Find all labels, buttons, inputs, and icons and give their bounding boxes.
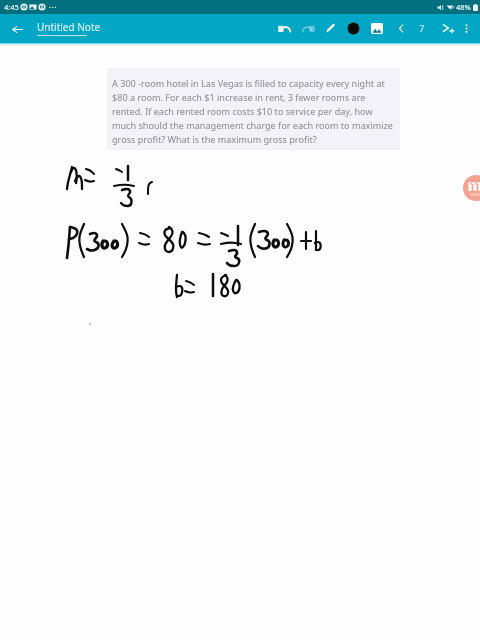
button[interactable]: Add page xyxy=(438,18,458,38)
button[interactable]: Back xyxy=(7,19,27,39)
button[interactable]: More options xyxy=(456,18,476,38)
staticText: 4:45 xyxy=(4,2,19,12)
button[interactable]: Undo xyxy=(274,18,294,38)
staticText: 7 xyxy=(419,22,425,35)
button[interactable]: Pen colour xyxy=(343,18,363,38)
button[interactable]: Untitled Note xyxy=(37,20,101,36)
staticText: 48% xyxy=(456,2,471,12)
button[interactable]: Redo xyxy=(298,18,318,38)
button[interactable]: Note canvas xyxy=(0,0,480,640)
button[interactable]: Insert image xyxy=(367,18,387,38)
staticText: A 300 -room hotel in Las Vegas is filled… xyxy=(112,77,398,145)
button[interactable]: Pen xyxy=(320,18,340,38)
button[interactable]: Page 7 xyxy=(412,18,432,38)
staticText: Untitled Note xyxy=(37,20,101,34)
button[interactable]: Previous page xyxy=(391,18,411,38)
